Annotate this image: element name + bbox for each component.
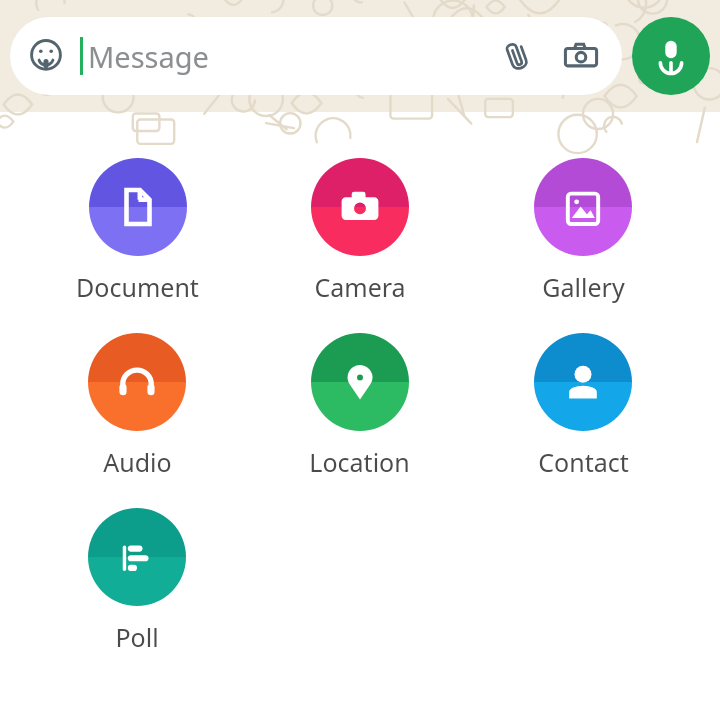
button[interactable]: Attach: [492, 31, 542, 81]
button[interactable]: Camera: [311, 158, 409, 304]
button[interactable]: Emoji: [24, 34, 68, 78]
button[interactable]: Audio: [88, 333, 186, 479]
staticText: Message: [88, 37, 209, 76]
staticText: Document: [76, 270, 199, 304]
staticText: Audio: [103, 445, 172, 479]
button[interactable]: Emoji: [10, 17, 622, 95]
staticText: Contact: [538, 445, 629, 479]
staticText: Gallery: [542, 270, 625, 304]
staticText: Location: [309, 445, 410, 479]
button[interactable]: Camera: [556, 31, 606, 81]
staticText: Poll: [115, 620, 159, 654]
button[interactable]: Voice message: [632, 17, 710, 95]
button[interactable]: Document: [76, 158, 199, 304]
button[interactable]: Gallery: [534, 158, 632, 304]
staticText: Camera: [314, 270, 406, 304]
button[interactable]: Contact: [534, 333, 632, 479]
button[interactable]: Location: [309, 333, 410, 479]
button[interactable]: Poll: [88, 508, 186, 654]
